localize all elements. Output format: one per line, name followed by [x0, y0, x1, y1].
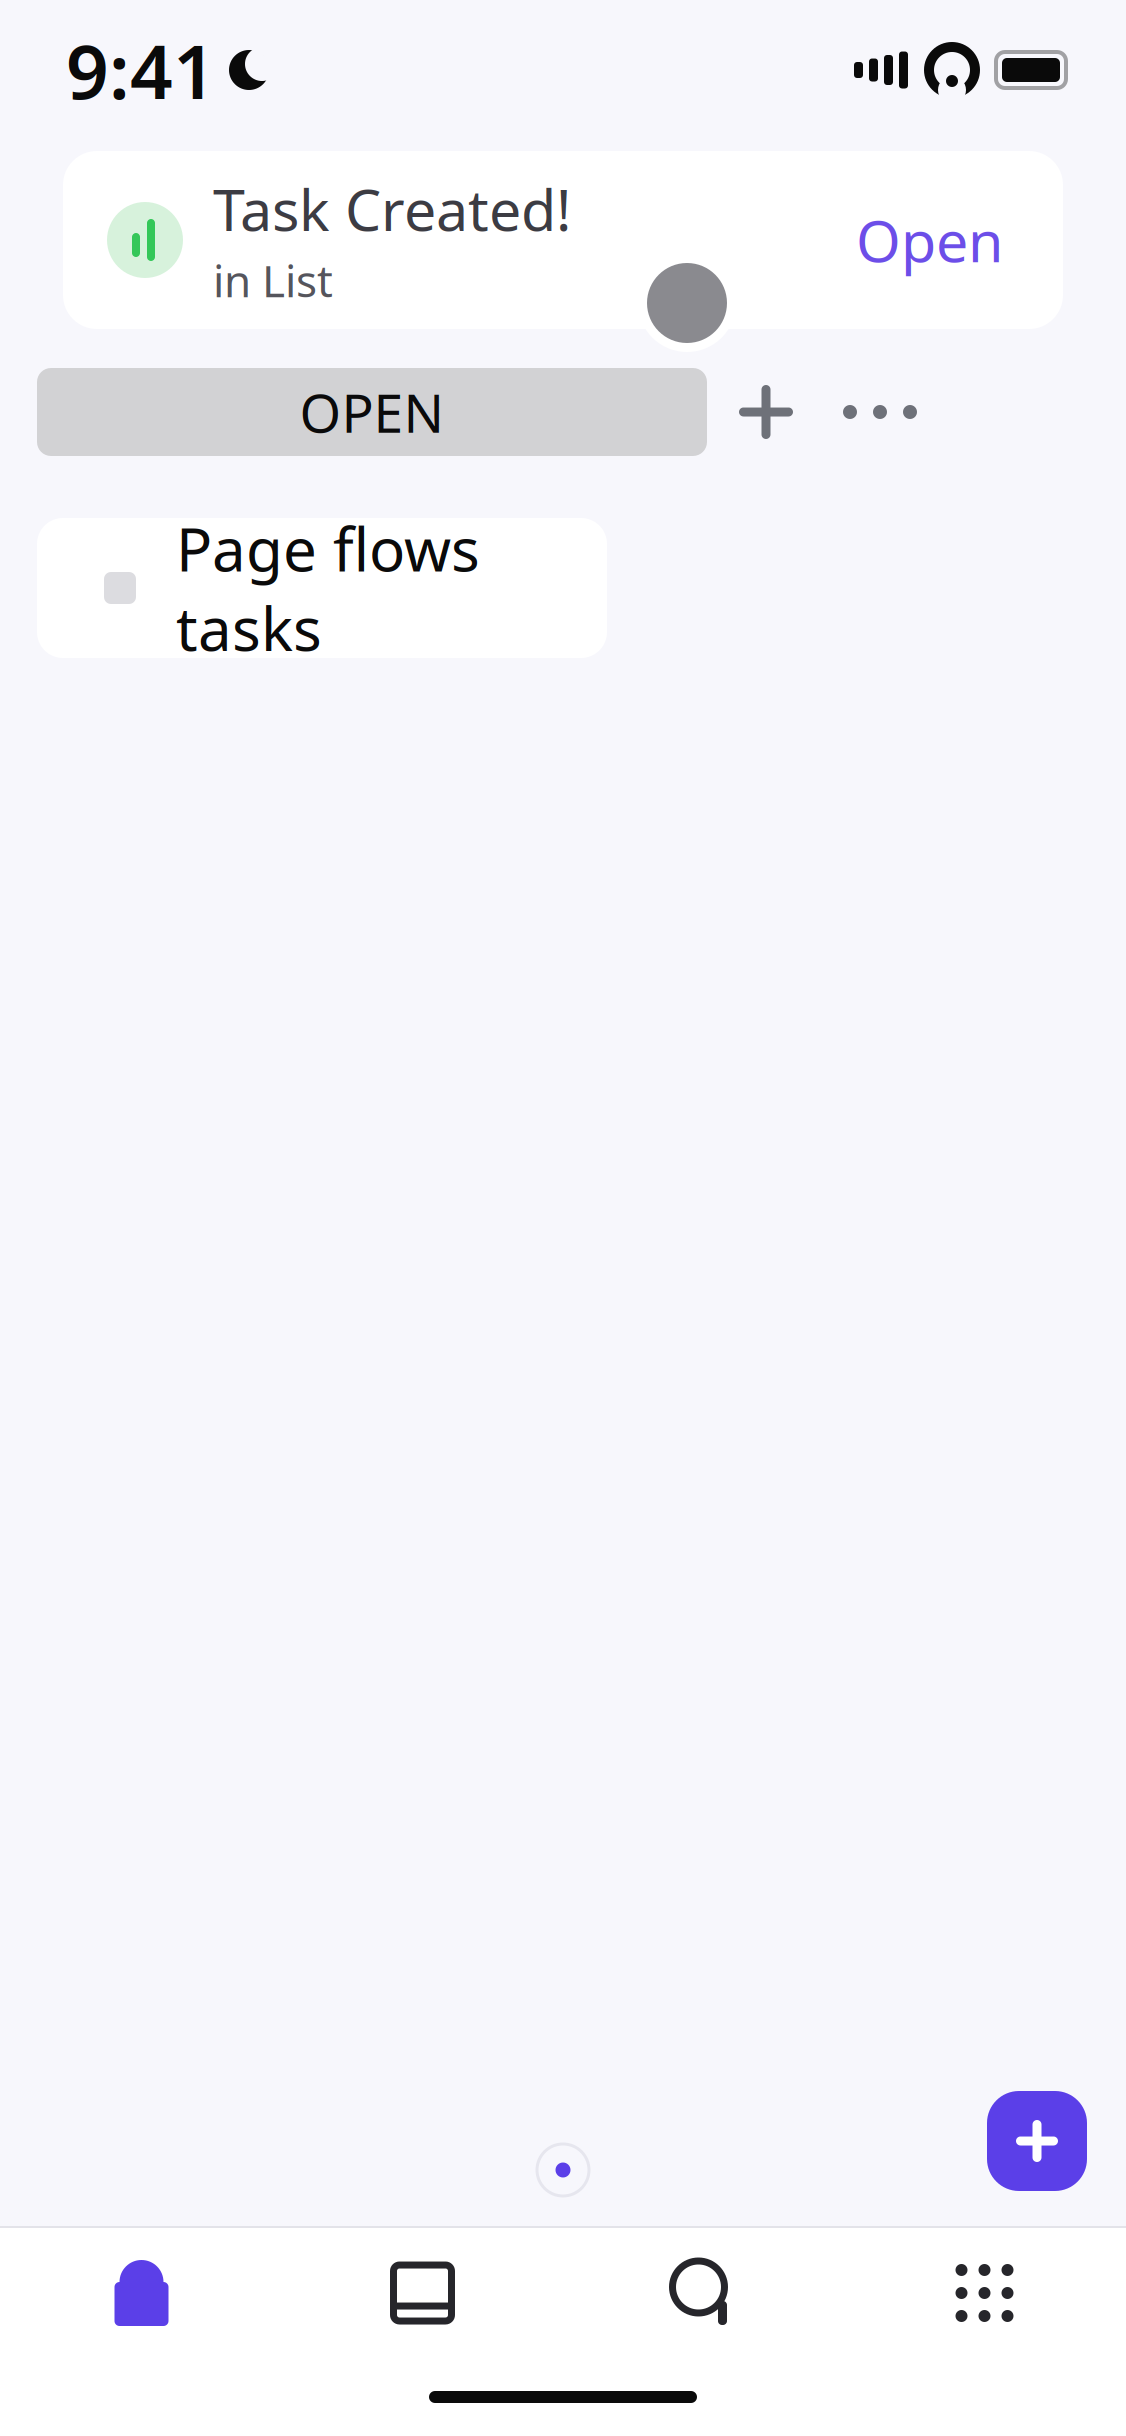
button[interactable]: OPEN: [37, 368, 707, 456]
staticText: Open: [856, 202, 1003, 278]
button[interactable]: Page flows tasks: [37, 518, 607, 658]
staticText: Task Created!: [213, 171, 571, 247]
staticText: in List: [213, 251, 333, 309]
staticText: 9:41: [66, 20, 216, 120]
button[interactable]: Apps: [844, 2228, 1125, 2358]
button[interactable]: More options: [825, 368, 935, 456]
button[interactable]: New task: [987, 2091, 1087, 2191]
staticText: OPEN: [299, 377, 444, 447]
button[interactable]: Add: [707, 368, 825, 456]
button[interactable]: Home: [1, 2228, 282, 2358]
staticText: Page flows tasks: [176, 508, 480, 668]
button[interactable]: Search: [563, 2228, 844, 2358]
button[interactable]: Task Created!: [63, 151, 1063, 329]
button[interactable]: Inbox: [282, 2228, 563, 2358]
